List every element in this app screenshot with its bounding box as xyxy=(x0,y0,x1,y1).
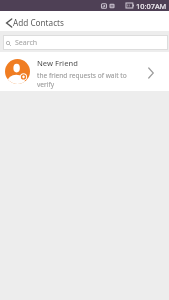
staticText: the friend requests of wait to verify xyxy=(37,71,139,89)
staticText: New Friend xyxy=(37,58,78,68)
button[interactable]: Search xyxy=(3,35,168,50)
button[interactable]: New Friend xyxy=(0,52,169,91)
staticText: Add Contacts xyxy=(13,17,64,28)
button[interactable]: Back xyxy=(0,13,13,31)
staticText: Search xyxy=(15,38,38,48)
staticText: 10:07AM xyxy=(136,1,167,11)
